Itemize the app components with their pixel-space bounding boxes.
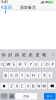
button[interactable]: N	[36, 83, 41, 89]
staticText: H	[32, 72, 35, 78]
staticText: Z	[10, 83, 12, 88]
button[interactable]: L	[47, 72, 52, 78]
button[interactable]: 空格	[15, 93, 37, 99]
button[interactable]: S	[9, 72, 14, 78]
button[interactable]: 尼	[20, 52, 27, 58]
button[interactable]: 拟	[14, 52, 20, 58]
button[interactable]: More candidates	[51, 52, 55, 58]
button[interactable]: D	[14, 72, 19, 78]
button[interactable]: Shift	[0, 83, 8, 89]
button[interactable]: Z	[9, 83, 14, 89]
staticText: 返回	[4, 5, 12, 10]
staticText: 拟	[15, 52, 19, 57]
staticText: D	[15, 72, 18, 78]
staticText: 逆	[35, 52, 39, 57]
staticText: O	[45, 62, 48, 67]
button[interactable]: U	[33, 61, 38, 67]
button[interactable]: G	[25, 72, 30, 78]
staticText: W	[6, 62, 10, 67]
staticText: 123	[1, 94, 7, 98]
button[interactable]: 呢	[41, 52, 48, 58]
staticText: 好	[8, 52, 12, 57]
button[interactable]: 返回	[0, 4, 13, 10]
staticText: 9:41	[1, 0, 8, 4]
button[interactable]: P	[50, 61, 55, 67]
button[interactable]: M	[42, 83, 47, 89]
button[interactable]: I	[39, 61, 44, 67]
staticText: B	[32, 83, 35, 88]
staticText: X	[16, 83, 18, 88]
button[interactable]: H	[31, 72, 36, 78]
staticText: F	[21, 72, 23, 78]
button[interactable]: C	[20, 83, 25, 89]
staticText: K	[43, 72, 45, 78]
button[interactable]: B	[31, 83, 36, 89]
button[interactable]: J	[36, 72, 41, 78]
staticText: E	[13, 62, 15, 67]
button[interactable]: O	[45, 61, 49, 67]
staticText: 呢	[42, 52, 46, 57]
button[interactable]: W	[6, 61, 11, 67]
staticText: T	[24, 62, 26, 67]
button[interactable]: 逆	[34, 52, 41, 58]
button[interactable]: Next keyboard	[9, 93, 15, 99]
button[interactable]: R	[17, 61, 22, 67]
button[interactable]: Q	[0, 61, 5, 67]
staticText: Q	[1, 62, 4, 67]
staticText: L	[49, 72, 51, 78]
staticText: 添加备注	[20, 5, 36, 10]
button[interactable]: 好	[7, 52, 14, 58]
staticText: R	[18, 62, 20, 67]
staticText: M	[42, 83, 46, 88]
staticText: P	[51, 62, 53, 67]
staticText: C	[21, 83, 24, 88]
button[interactable]: 你	[0, 52, 7, 58]
staticText: 你	[1, 52, 5, 57]
staticText: I	[41, 62, 42, 67]
button[interactable]: T	[22, 61, 27, 67]
staticText: U	[34, 62, 37, 67]
staticText: G	[26, 72, 29, 78]
button[interactable]: X	[14, 83, 19, 89]
button[interactable]: Y	[28, 61, 33, 67]
button[interactable]: A	[3, 72, 8, 78]
button[interactable]: K	[42, 72, 47, 78]
button[interactable]: F	[20, 72, 25, 78]
staticText: 换行	[47, 95, 53, 98]
staticText: Y	[29, 62, 31, 67]
staticText: J	[38, 72, 39, 78]
staticText: A	[4, 72, 7, 78]
button[interactable]: E	[11, 61, 16, 67]
staticText: 泥	[29, 52, 33, 57]
staticText: N	[37, 83, 40, 88]
button[interactable]: Delete	[48, 83, 56, 89]
staticText: 尼	[22, 52, 26, 57]
staticText: 空格	[23, 95, 29, 98]
button[interactable]: 添加备注	[18, 4, 37, 10]
button[interactable]: 123	[0, 93, 8, 99]
button[interactable]: 换行	[44, 93, 56, 99]
staticText: V	[27, 83, 29, 88]
button[interactable]: 泥	[27, 52, 34, 58]
staticText: S	[10, 72, 12, 78]
button[interactable]: V	[25, 83, 30, 89]
